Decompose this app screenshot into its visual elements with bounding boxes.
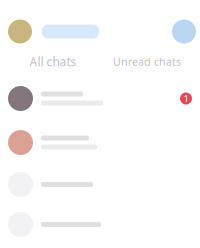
staticText: 1 [183, 92, 188, 105]
button[interactable] [0, 164, 200, 204]
button[interactable] [0, 204, 200, 244]
button[interactable] [0, 120, 200, 164]
button[interactable]: Compose [172, 19, 196, 43]
button[interactable]: All chats [28, 55, 78, 67]
staticText: Unread chats [113, 54, 181, 69]
button[interactable]: 1 [0, 76, 200, 120]
button[interactable]: Unread chats [116, 55, 178, 67]
staticText: All chats [29, 53, 76, 69]
button[interactable]: Profile [8, 19, 32, 43]
